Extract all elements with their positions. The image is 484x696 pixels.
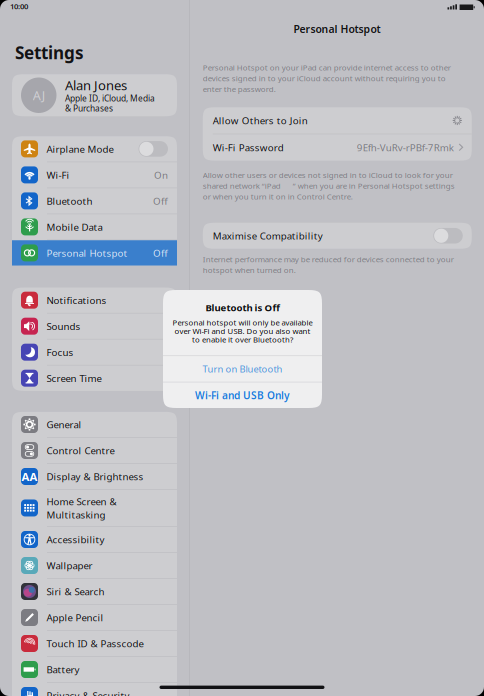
staticText: & Purchases [65,102,113,114]
staticText: Maximise Compatibility [213,229,323,242]
staticText: AA [21,469,37,484]
staticText: On [154,168,168,182]
button[interactable]: Wi-Fi and USB Only [163,382,322,408]
button[interactable]: AA [12,464,177,489]
staticText: Wi-Fi Password [213,141,284,154]
staticText: Allow Others to Join [213,114,308,127]
button[interactable]: Mobile Data [12,214,177,239]
staticText: Off [153,194,168,208]
button[interactable]: Sounds [12,313,177,339]
staticText: Accessibility [46,533,104,546]
staticText: Off [153,246,168,260]
button[interactable]: Wallpaper [12,553,177,578]
staticText: Personal Hotspot on your iPad can provid… [203,62,451,94]
button[interactable]: Screen Time [12,365,177,391]
button[interactable]: Allow Others to Join [203,107,472,134]
button[interactable]: AJ [12,74,177,116]
button[interactable]: Touch ID & Passcode [12,631,177,656]
staticText: Wi-Fi [46,168,69,182]
staticText: Settings [15,41,84,64]
staticText: Wi-Fi and USB Only [195,388,290,402]
button[interactable]: Battery [12,657,177,682]
button[interactable]: Home Screen & Multitasking [12,490,177,526]
staticText: Personal hotspot will only be available [172,317,312,328]
button[interactable]: Wi-Fi [12,162,177,187]
staticText: Home Screen & Multitasking [46,495,116,521]
button[interactable]: General [12,412,177,437]
button[interactable]: Focus [12,339,177,365]
staticText: Display & Brightness [46,470,143,483]
staticText: 10:00 [10,1,28,11]
staticText: Notifications [46,294,106,307]
button[interactable]: Accessibility [12,527,177,552]
button[interactable]: Turn on Bluetooth [163,356,322,382]
button[interactable]: Personal Hotspot [12,240,177,265]
button[interactable]: Maximise Compatibility [203,223,472,249]
staticText: Sounds [46,320,80,333]
staticText: Apple Pencil [46,611,103,624]
staticText: Personal Hotspot [293,22,380,36]
staticText: Alan Jones [65,76,127,94]
button[interactable]: Wi-Fi Password [203,134,472,161]
staticText: Bluetooth is Off [205,301,279,314]
staticText: Allow other users or devices not signed … [203,170,455,202]
staticText: Screen Time [46,372,101,385]
staticText: Turn on Bluetooth [202,362,282,375]
staticText: Airplane Mode [46,142,113,156]
staticText: Apple ID, iCloud, Media [65,92,155,104]
staticText: Mobile Data [46,220,102,234]
button[interactable]: Privacy & Security [12,683,177,696]
staticText: Battery [46,663,79,676]
staticText: Touch ID & Passcode [46,637,143,650]
staticText: Bluetooth [46,194,92,208]
staticText: Personal Hotspot [46,246,127,260]
staticText: Wallpaper [46,559,92,572]
staticText: Control Centre [46,444,114,457]
button[interactable]: Apple Pencil [12,605,177,630]
button[interactable]: Control Centre [12,438,177,463]
button[interactable]: Airplane Mode [12,136,177,161]
button[interactable]: Bluetooth [12,188,177,213]
staticText: over Wi-Fi and USB. Do you also want [174,326,310,336]
button[interactable]: Siri & Search [12,579,177,604]
staticText: Siri & Search [46,585,104,598]
staticText: Focus [46,346,73,359]
staticText: 9Efh-VuRv-rPBf-7Rmk [357,141,454,154]
staticText: Internet performance may be reduced for … [203,254,454,275]
button[interactable]: Notifications [12,287,177,313]
staticText: AJ [33,87,45,104]
staticText: Privacy & Security [46,689,129,696]
staticText: General [46,418,81,431]
staticText: to enable it over Bluetooth? [192,334,293,345]
